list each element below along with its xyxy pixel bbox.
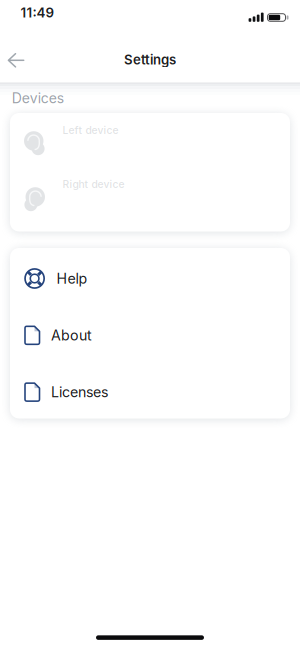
staticText: Right device xyxy=(62,178,124,190)
button[interactable]: Left device xyxy=(10,117,290,171)
button[interactable]: Back xyxy=(2,47,30,73)
staticText: Left device xyxy=(62,124,118,136)
button[interactable]: Right device xyxy=(10,171,290,225)
staticText: Licenses xyxy=(51,383,108,401)
staticText: About xyxy=(51,327,92,344)
button[interactable]: Licenses xyxy=(10,364,290,420)
button[interactable]: About xyxy=(10,307,290,364)
staticText: 11:49 xyxy=(20,5,54,21)
button[interactable]: Help xyxy=(10,250,290,307)
staticText: Settings xyxy=(124,52,176,68)
staticText: Help xyxy=(56,270,87,287)
staticText: Devices xyxy=(12,90,64,106)
